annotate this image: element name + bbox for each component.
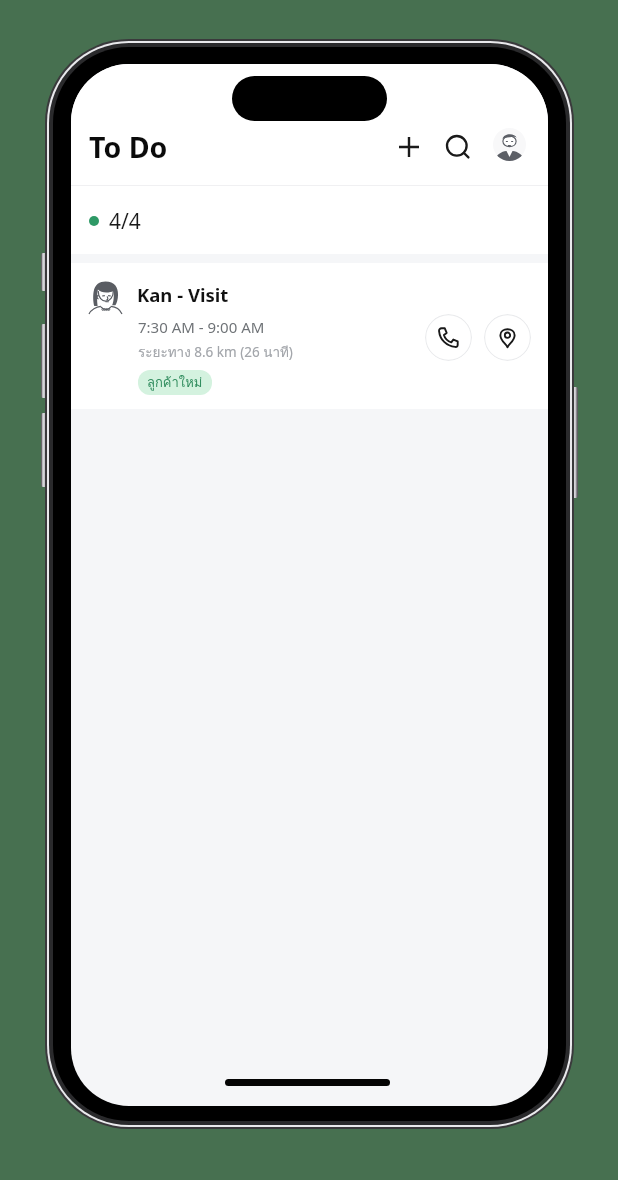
staticText: To Do (89, 128, 168, 167)
button[interactable]: Directions (484, 314, 531, 361)
button[interactable]: 4/4 (71, 186, 548, 254)
staticText: ระยะทาง 8.6 km (26 นาที) (138, 341, 293, 362)
staticText: Kan - Visit (137, 282, 229, 307)
button[interactable]: Search (435, 124, 481, 170)
button[interactable]: Add (386, 124, 432, 170)
button[interactable]: Profile (493, 128, 526, 161)
button[interactable]: Call (425, 314, 472, 361)
staticText: 4/4 (109, 207, 141, 236)
button[interactable]: Kan - Visit (71, 263, 548, 409)
staticText: 7:30 AM - 9:00 AM (138, 317, 265, 337)
staticText: ลูกค้าใหม่ (147, 372, 203, 393)
